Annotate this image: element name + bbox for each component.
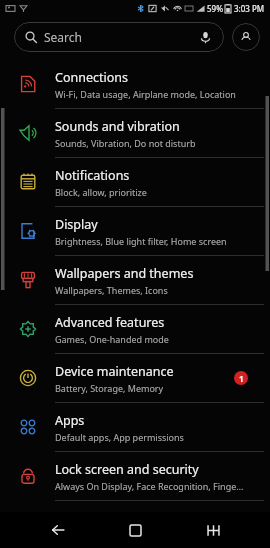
staticText: Battery, Storage, Memory [55, 382, 164, 394]
button[interactable]: Home [115, 512, 155, 548]
button[interactable]: Recents [193, 512, 233, 548]
staticText: Games, One-handed mode [55, 333, 169, 345]
button[interactable]: Voice search [197, 29, 213, 45]
staticText: Apps [55, 412, 85, 429]
button[interactable]: Advanced features [0, 305, 270, 353]
button[interactable]: Lock screen and security [0, 452, 270, 500]
staticText: Block, allow, prioritize [55, 186, 147, 198]
button[interactable]: Account [232, 23, 260, 51]
staticText: Device maintenance [55, 363, 174, 380]
staticText: Wallpapers and themes [55, 265, 194, 282]
staticText: Notifications [55, 167, 130, 184]
staticText: 59% [207, 3, 223, 14]
staticText: Sounds, Vibration, Do not disturb [55, 137, 196, 149]
button[interactable]: Back [38, 512, 78, 548]
button[interactable]: Notifications [0, 158, 270, 206]
staticText: Brightness, Blue light filter, Home scre… [55, 235, 227, 247]
button[interactable]: Connections [0, 60, 270, 108]
staticText: Always On Display, Face Recognition, Fin… [55, 480, 244, 492]
button[interactable]: Wallpapers and themes [0, 256, 270, 304]
staticText: Sounds and vibration [55, 118, 180, 135]
staticText: Default apps, App permissions [55, 431, 184, 443]
button[interactable]: Device maintenance [0, 354, 270, 402]
staticText: Advanced features [55, 314, 165, 331]
staticText: Display [55, 216, 98, 233]
button[interactable]: Apps [0, 403, 270, 451]
staticText: 3:03 PM [234, 3, 265, 14]
staticText: Wallpapers, Themes, Icons [55, 284, 168, 296]
button[interactable]: Search [14, 22, 224, 52]
staticText: Connections [55, 69, 128, 86]
staticText: 1 [239, 373, 244, 384]
staticText: Lock screen and security [55, 461, 199, 478]
button[interactable]: Sounds and vibration [0, 109, 270, 157]
staticText: Search [44, 29, 82, 45]
staticText: Wi-Fi, Data usage, Airplane mode, Locati… [55, 88, 236, 100]
button[interactable]: Display [0, 207, 270, 255]
